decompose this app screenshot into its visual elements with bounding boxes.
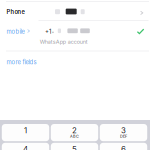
staticText: 1 [24,126,27,135]
button[interactable]: 6 [100,143,147,150]
button[interactable]: 5 [51,143,98,150]
button[interactable]: 1 [2,124,49,141]
staticText: +1 [45,28,51,35]
staticText: WhatsApp account [40,38,88,45]
staticText: DEF [120,134,127,139]
staticText: mobile [7,28,25,35]
staticText: 3 [121,126,126,135]
staticText: more fields [7,59,37,66]
button[interactable]: 3 [100,124,147,141]
staticText: 6 [121,144,126,150]
staticText: Phone [7,8,25,15]
button[interactable]: mobile [0,21,150,51]
staticText: 4 [23,144,28,150]
button[interactable]: Phone [0,2,150,20]
staticText: ABC [70,134,79,139]
staticText: 2 [72,126,77,135]
button[interactable]: more fields [0,53,90,69]
button[interactable]: 2 [51,124,98,141]
button[interactable]: 4 [2,143,49,150]
staticText: 5 [72,144,77,150]
